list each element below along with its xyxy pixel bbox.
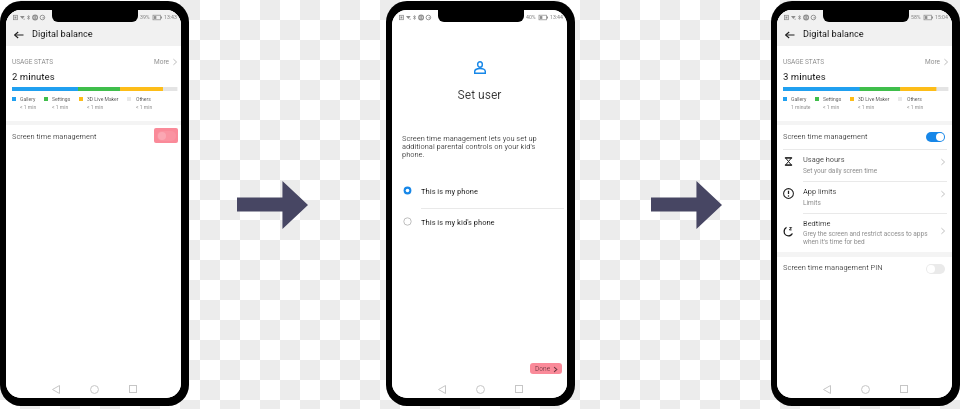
staticText: Bedtime [803, 219, 831, 228]
button[interactable]: Screen time management [777, 125, 952, 148]
button[interactable]: Back [6, 24, 31, 46]
button[interactable]: Done [530, 363, 562, 374]
button[interactable]: Back [818, 380, 836, 398]
staticText: 13:43 [164, 14, 177, 20]
staticText: Screen time management [12, 132, 97, 141]
staticText: Gallery [791, 96, 807, 102]
button[interactable]: This is my kid's phone [392, 213, 567, 232]
staticText: Settings [823, 96, 842, 102]
staticText: Screen time management lets you set up a… [402, 134, 538, 159]
button[interactable]: More [154, 58, 179, 66]
button[interactable]: Home [85, 380, 103, 398]
staticText: Limits [803, 199, 821, 207]
button[interactable]: This is my phone [392, 182, 567, 201]
button[interactable]: Screen time management PIN [777, 257, 952, 279]
staticText: Usage hours [803, 155, 845, 164]
staticText: Settings [52, 96, 71, 102]
staticText: 3 minutes [783, 71, 826, 82]
button[interactable]: Recents [124, 380, 142, 398]
button[interactable]: Screen time management PIN toggle [926, 264, 945, 274]
staticText: when it's time for bed [803, 238, 865, 246]
button[interactable]: Usage hours [777, 148, 952, 175]
staticText: This is my phone [421, 187, 478, 196]
staticText: Screen time management PIN [783, 263, 883, 272]
staticText: 3D Live Maker [87, 96, 119, 102]
button[interactable]: Back [433, 380, 451, 398]
staticText: This is my kid's phone [421, 218, 495, 227]
staticText: 40% [526, 14, 536, 20]
staticText: < 1 min [136, 104, 153, 110]
staticText: < 1 min [87, 104, 104, 110]
button[interactable]: Back [47, 380, 65, 398]
staticText: Set your daily screen time [803, 167, 878, 175]
staticText: < 1 min [907, 104, 924, 110]
button[interactable]: Screen time management toggle [154, 128, 178, 143]
staticText: 58% [911, 14, 921, 20]
staticText: Done [535, 365, 551, 373]
staticText: < 1 min [20, 104, 37, 110]
staticText: App limits [803, 187, 837, 196]
staticText: Screen time management [783, 132, 868, 141]
button[interactable]: Recents [510, 380, 528, 398]
staticText: Digital balance [803, 28, 864, 39]
staticText: USAGE STATS [783, 58, 825, 66]
staticText: Set user [392, 88, 567, 102]
button[interactable]: Recents [895, 380, 913, 398]
staticText: 1 minute [791, 104, 811, 110]
staticText: Others [907, 96, 922, 102]
button[interactable]: Screen time management [6, 125, 181, 145]
staticText: 13:44 [550, 14, 563, 20]
staticText: Others [136, 96, 151, 102]
button[interactable]: More [925, 58, 950, 66]
staticText: Digital balance [32, 28, 93, 39]
button[interactable]: Home [856, 380, 874, 398]
staticText: 15:04 [935, 14, 948, 20]
staticText: USAGE STATS [12, 58, 54, 66]
staticText: 3D Live Maker [858, 96, 890, 102]
staticText: 2 minutes [12, 71, 55, 82]
staticText: More [925, 58, 940, 66]
staticText: < 1 min [52, 104, 69, 110]
staticText: Grey the screen and restrict access to a… [803, 230, 928, 238]
button[interactable]: Screen time management toggle [926, 132, 945, 142]
staticText: 39% [140, 14, 150, 20]
staticText: < 1 min [858, 104, 875, 110]
staticText: < 1 min [823, 104, 840, 110]
staticText: More [154, 58, 169, 66]
button[interactable]: App limits [777, 180, 952, 207]
staticText: Gallery [20, 96, 36, 102]
button[interactable]: Home [471, 380, 489, 398]
button[interactable]: Back [777, 24, 802, 46]
button[interactable]: Bedtime [777, 212, 952, 250]
